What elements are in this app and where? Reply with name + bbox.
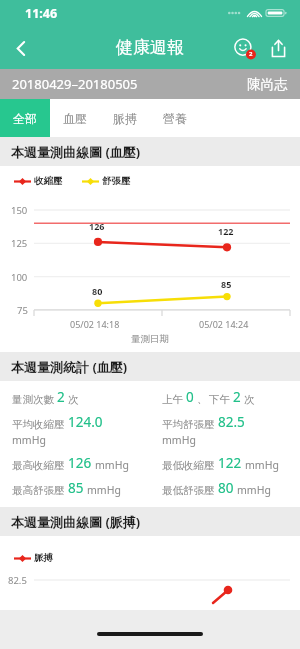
staticText: 舒張壓 xyxy=(102,175,131,187)
staticText: 本週量測統計 (血壓) xyxy=(11,358,128,376)
staticText: 100 xyxy=(11,271,28,284)
staticText: 最高收縮壓 xyxy=(12,459,65,472)
button[interactable]: 血壓 xyxy=(50,99,100,137)
button[interactable]: Messages xyxy=(227,31,261,65)
staticText: 最低舒張壓 xyxy=(162,484,215,497)
staticText: 150 xyxy=(11,204,28,217)
staticText: 85 xyxy=(68,479,84,497)
staticText: 85 xyxy=(221,278,232,290)
staticText: 126 xyxy=(89,220,105,232)
staticText: 脈搏 xyxy=(113,111,137,126)
button[interactable]: 營養 xyxy=(150,99,200,137)
staticText: 收縮壓 xyxy=(34,175,63,187)
staticText: 本週量測曲線圖 (血壓) xyxy=(11,143,141,161)
staticText: 2 xyxy=(249,50,253,58)
staticText: 營養 xyxy=(163,111,187,126)
staticText: 122 xyxy=(218,454,242,472)
staticText: 、 xyxy=(197,393,208,406)
staticText: 11:46 xyxy=(25,5,58,22)
staticText: 2 xyxy=(233,388,241,406)
staticText: 量測次數 xyxy=(12,393,54,406)
button[interactable]: 脈搏 xyxy=(100,99,150,137)
button[interactable]: 全部 xyxy=(0,99,50,137)
staticText: 平均收縮壓 xyxy=(12,418,65,431)
staticText: 全部 xyxy=(13,111,37,126)
staticText: 05/02 14:18 xyxy=(70,318,120,330)
staticText: 125 xyxy=(11,237,28,250)
staticText: 次 xyxy=(68,393,79,406)
staticText: 陳尚志 xyxy=(247,76,288,93)
staticText: 124.0 xyxy=(68,413,103,431)
staticText: mmHg xyxy=(245,458,279,472)
staticText: 122 xyxy=(218,225,234,237)
staticText: 80 xyxy=(218,479,234,497)
staticText: 最低收縮壓 xyxy=(162,459,215,472)
button[interactable]: Back xyxy=(0,27,42,69)
staticText: 80 xyxy=(92,285,103,297)
staticText: 126 xyxy=(68,454,92,472)
button[interactable]: Share xyxy=(261,31,295,65)
staticText: 0 xyxy=(186,388,194,406)
staticText: 脈搏 xyxy=(34,552,53,564)
staticText: 20180429–20180505 xyxy=(12,75,138,93)
staticText: 82.5 xyxy=(8,574,27,587)
staticText: mmHg xyxy=(237,483,271,497)
staticText: 本週量測曲線圖 (脈搏) xyxy=(11,513,141,531)
staticText: 平均舒張壓 xyxy=(162,418,215,431)
staticText: 量測日期 xyxy=(131,333,169,345)
staticText: 最高舒張壓 xyxy=(12,484,65,497)
staticText: mmHg xyxy=(87,483,121,497)
staticText: 82.5 xyxy=(218,413,245,431)
staticText: mmHg xyxy=(162,433,196,447)
staticText: 2 xyxy=(57,388,65,406)
staticText: 上午 xyxy=(162,393,183,406)
staticText: 血壓 xyxy=(63,111,87,126)
staticText: mmHg xyxy=(95,458,129,472)
staticText: 05/02 14:24 xyxy=(199,318,249,330)
staticText: 次 xyxy=(244,393,255,406)
staticText: 健康週報 xyxy=(116,37,184,58)
staticText: mmHg xyxy=(12,433,46,447)
staticText: 下午 xyxy=(209,393,230,406)
staticText: 75 xyxy=(17,304,28,317)
